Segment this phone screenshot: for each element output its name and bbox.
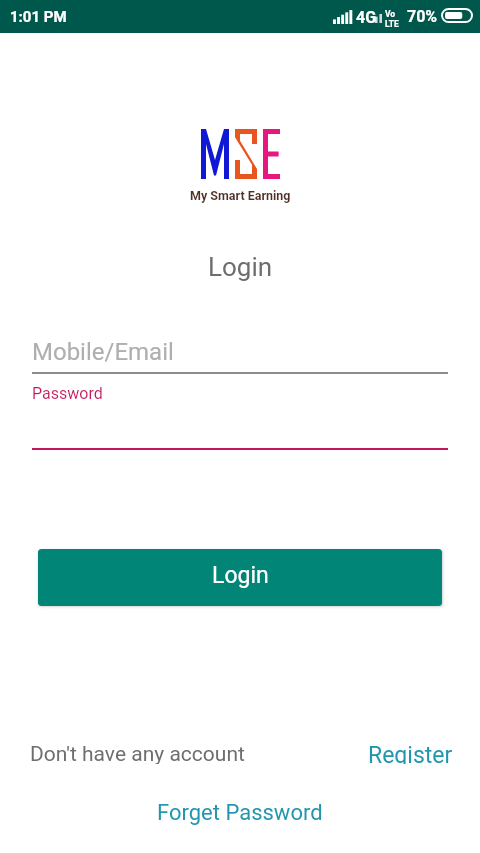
other: MSE - My Smart Earning logo bbox=[0, 129, 480, 203]
staticText: Register bbox=[368, 742, 453, 764]
button[interactable]: Login bbox=[38, 549, 442, 606]
staticText: Forget Password bbox=[157, 800, 323, 826]
button[interactable]: Mobile/Email bbox=[32, 330, 448, 374]
button[interactable]: Register bbox=[362, 738, 459, 768]
staticText: 4G bbox=[356, 8, 377, 27]
button[interactable]: Password bbox=[32, 384, 448, 450]
other: Data transfer bbox=[375, 12, 384, 23]
staticText: LTE bbox=[385, 19, 399, 29]
staticText: 70% bbox=[407, 7, 438, 26]
other: Battery 70 percent bbox=[441, 8, 473, 23]
staticText: Login bbox=[212, 562, 269, 589]
staticText: Vo bbox=[385, 9, 396, 19]
button[interactable]: Forget Password bbox=[149, 796, 331, 830]
staticText: Password bbox=[32, 384, 103, 403]
button[interactable]: Don't have any account bbox=[24, 738, 251, 768]
staticText: My Smart Earning bbox=[190, 188, 291, 203]
other: Mobile signal strength bbox=[333, 10, 353, 24]
staticText: 1:01 PM bbox=[10, 8, 67, 26]
staticText: Mobile/Email bbox=[32, 338, 174, 366]
staticText: Don't have any account bbox=[30, 742, 245, 764]
staticText: Login bbox=[208, 252, 273, 282]
